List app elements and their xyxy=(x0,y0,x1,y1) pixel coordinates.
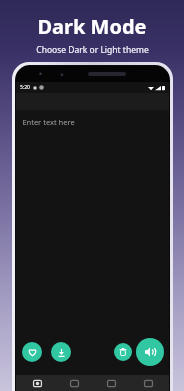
staticText: 5:20 xyxy=(20,84,30,91)
staticText: Enter text here xyxy=(22,117,75,127)
staticText: Dark Mode xyxy=(37,13,147,40)
button[interactable]: Enter text here xyxy=(22,117,163,127)
button[interactable]: Home xyxy=(21,375,53,391)
button[interactable]: Folder xyxy=(58,375,90,391)
button[interactable]: Photos xyxy=(95,375,127,391)
button[interactable]: Volume xyxy=(136,338,164,366)
staticText: Choose Dark or Light theme xyxy=(36,44,149,56)
button[interactable]: Favorite xyxy=(22,342,42,362)
button[interactable]: Delete xyxy=(114,343,132,361)
button[interactable]: Account xyxy=(132,375,164,391)
button[interactable]: Download xyxy=(51,342,71,362)
